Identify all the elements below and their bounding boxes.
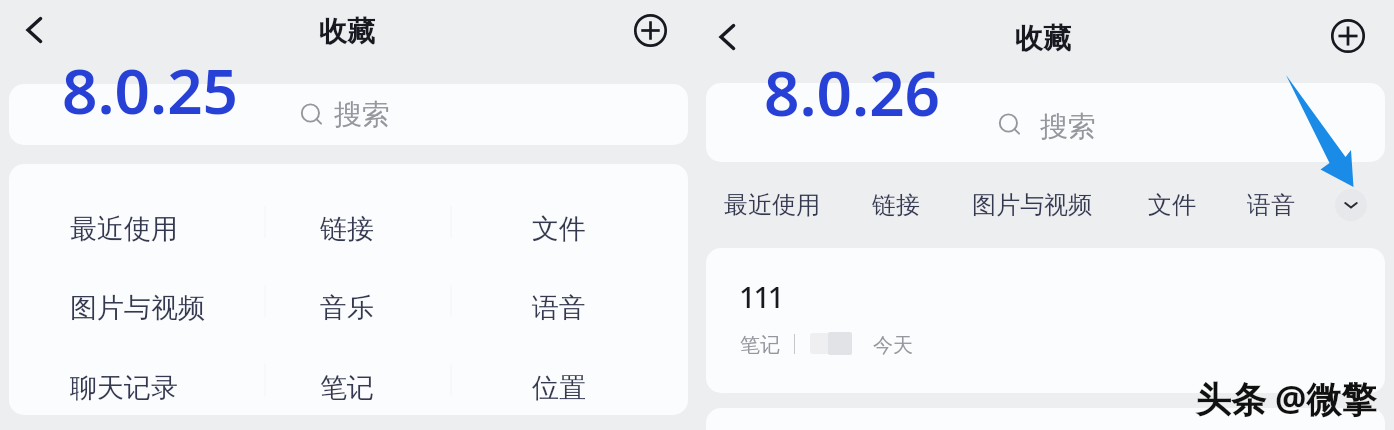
button[interactable]: Add favourite — [1326, 14, 1370, 58]
staticText: 聊天记录 — [70, 371, 178, 405]
button[interactable]: 笔记 — [298, 357, 488, 419]
button[interactable]: Add favourite — [628, 8, 672, 52]
button[interactable]: 语音 — [1247, 184, 1299, 226]
staticText: 图片与视频 — [972, 190, 1092, 220]
staticText: 搜索 — [1040, 109, 1096, 144]
button[interactable]: 图片与视频 — [48, 277, 280, 339]
button[interactable]: 最近使用 — [48, 198, 280, 260]
staticText: 8.0.25 — [62, 48, 239, 132]
staticText: 收藏 — [1015, 21, 1071, 56]
staticText: 最近使用 — [70, 212, 178, 246]
button[interactable]: 位置 — [510, 357, 660, 419]
button[interactable]: 链接 — [298, 198, 488, 260]
button[interactable] — [9, 84, 688, 145]
button[interactable]: 语音 — [510, 277, 660, 339]
staticText: 笔记 — [320, 371, 374, 405]
staticText: 8.0.26 — [764, 50, 941, 134]
staticText: 位置 — [532, 371, 586, 405]
staticText: 今天 — [873, 333, 913, 358]
button[interactable] — [706, 248, 1385, 393]
staticText: 111 — [739, 277, 783, 316]
staticText: 笔记 — [740, 333, 780, 358]
staticText: 最近使用 — [724, 190, 820, 220]
button[interactable]: 链接 — [872, 184, 922, 226]
button[interactable]: 聊天记录 — [48, 357, 280, 419]
staticText: 音乐 — [320, 291, 374, 325]
staticText: 头条 @微擎 — [1196, 375, 1377, 423]
button[interactable]: 音乐 — [298, 277, 488, 339]
staticText: 语音 — [532, 291, 586, 325]
staticText: 搜索 — [334, 97, 390, 132]
button[interactable]: Back — [12, 8, 56, 52]
staticText: 文件 — [1148, 190, 1196, 220]
button[interactable]: 文件 — [510, 198, 660, 260]
staticText: 图片与视频 — [70, 291, 205, 325]
button[interactable]: Show more filters — [1335, 189, 1367, 221]
button[interactable]: 文件 — [1148, 184, 1198, 226]
staticText: 链接 — [320, 212, 374, 246]
button[interactable]: 图片与视频 — [972, 184, 1098, 226]
button[interactable]: Back — [705, 15, 749, 59]
button[interactable]: 最近使用 — [724, 184, 820, 226]
staticText: 文件 — [532, 212, 586, 246]
staticText: 收藏 — [319, 14, 375, 49]
staticText: 链接 — [872, 190, 920, 220]
staticText: 语音 — [1247, 190, 1295, 220]
button[interactable] — [706, 83, 1385, 162]
